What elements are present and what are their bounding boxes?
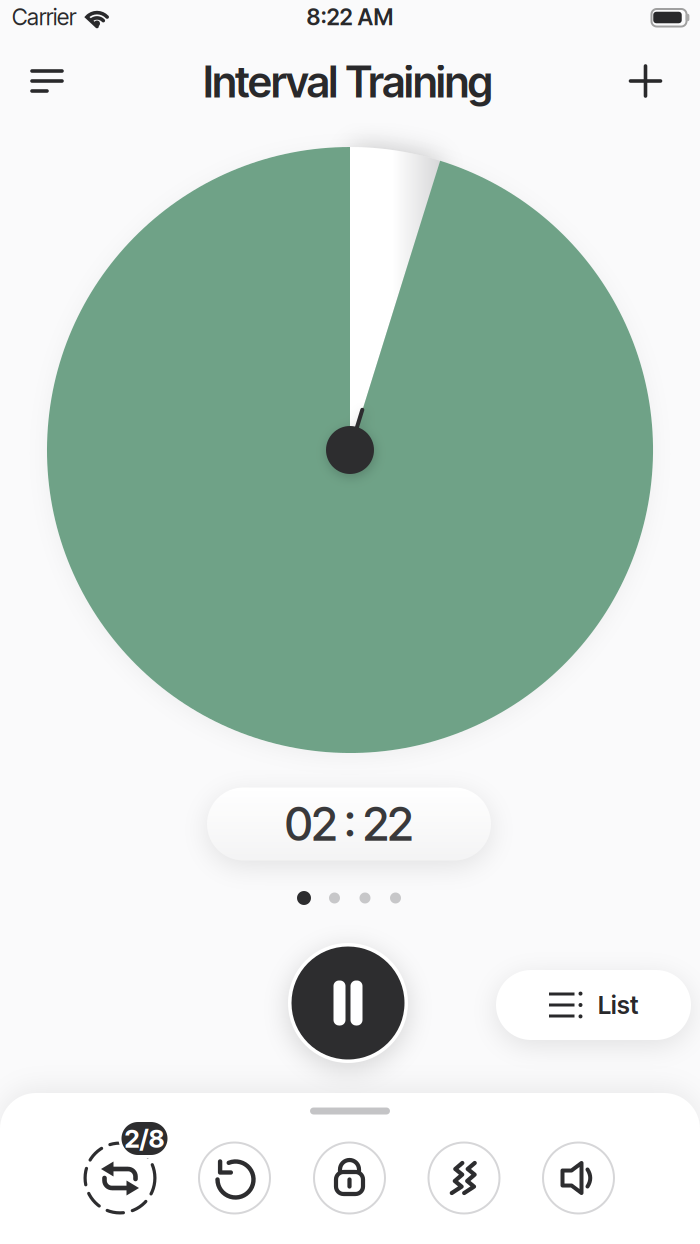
button[interactable]: Restart bbox=[198, 1141, 271, 1214]
staticText: Interval Training bbox=[203, 56, 493, 108]
button[interactable]: Repeat 2 of 8 bbox=[83, 1141, 156, 1214]
staticText: 02 : 22 bbox=[285, 796, 413, 852]
button[interactable]: Add bbox=[620, 56, 670, 106]
button[interactable]: Sound bbox=[542, 1141, 615, 1214]
button[interactable]: List bbox=[496, 970, 691, 1040]
button[interactable]: Menu bbox=[22, 61, 72, 101]
staticText: List bbox=[598, 990, 638, 1020]
button[interactable]: Pause bbox=[287, 942, 409, 1064]
staticText: Carrier bbox=[12, 3, 76, 31]
button[interactable]: Vibration bbox=[427, 1141, 500, 1214]
button[interactable]: Lock bbox=[313, 1141, 386, 1214]
staticText: 2/8 bbox=[124, 1123, 164, 1154]
staticText: 8:22 AM bbox=[306, 3, 393, 31]
